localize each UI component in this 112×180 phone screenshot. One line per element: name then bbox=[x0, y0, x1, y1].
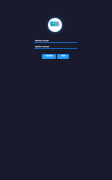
staticText: Digite o email bbox=[35, 40, 49, 43]
staticText: Cadastrar bbox=[45, 54, 53, 56]
button[interactable]: Digite a senha bbox=[35, 45, 78, 49]
staticText: Cadastrar bbox=[45, 55, 53, 57]
staticText: Digite o email bbox=[35, 39, 49, 42]
staticText: Digite a senha bbox=[35, 45, 50, 48]
staticText: Login bbox=[61, 55, 66, 57]
other: App logo bbox=[48, 18, 62, 32]
button[interactable]: Login bbox=[57, 54, 69, 59]
button[interactable]: Cadastrar bbox=[42, 54, 56, 59]
button[interactable]: Digite o email bbox=[35, 39, 78, 43]
staticText: Login bbox=[61, 54, 66, 56]
staticText: Digite a senha bbox=[35, 46, 50, 49]
